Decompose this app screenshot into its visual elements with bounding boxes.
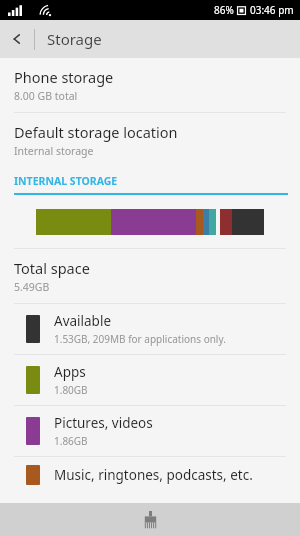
button[interactable]: Total space [0,249,300,303]
staticText: 1.53GB, 209MB for applications only. [54,332,226,346]
button[interactable]: Back [0,20,34,58]
staticText: 5.49GB [14,280,50,294]
staticText: Total space [14,258,90,278]
staticText: Music, ringtones, podcasts, etc. [54,466,253,484]
staticText: 03:46 pm [250,3,294,17]
staticText: Internal storage [14,144,94,158]
staticText: 8.00 GB total [14,89,78,103]
staticText: Storage [47,29,102,49]
staticText: Default storage location [14,122,178,142]
staticText: Available [54,312,111,330]
staticText: Pictures, videos [54,414,153,432]
staticText: 1.80GB [54,383,88,397]
button[interactable]: Music, ringtones, podcasts, etc. [0,457,300,493]
button[interactable]: Apps [0,355,300,405]
button[interactable]: Default storage location [0,113,300,167]
button[interactable]: Clean up storage [137,507,163,533]
staticText: INTERNAL STORAGE [14,174,118,188]
staticText: 86% [214,3,234,17]
staticText: 1.86GB [54,434,88,448]
button[interactable]: Available [0,304,300,354]
button[interactable]: Phone storage [0,58,300,112]
button[interactable]: Pictures, videos [0,406,300,456]
staticText: Phone storage [14,67,114,87]
staticText: Apps [54,363,86,381]
